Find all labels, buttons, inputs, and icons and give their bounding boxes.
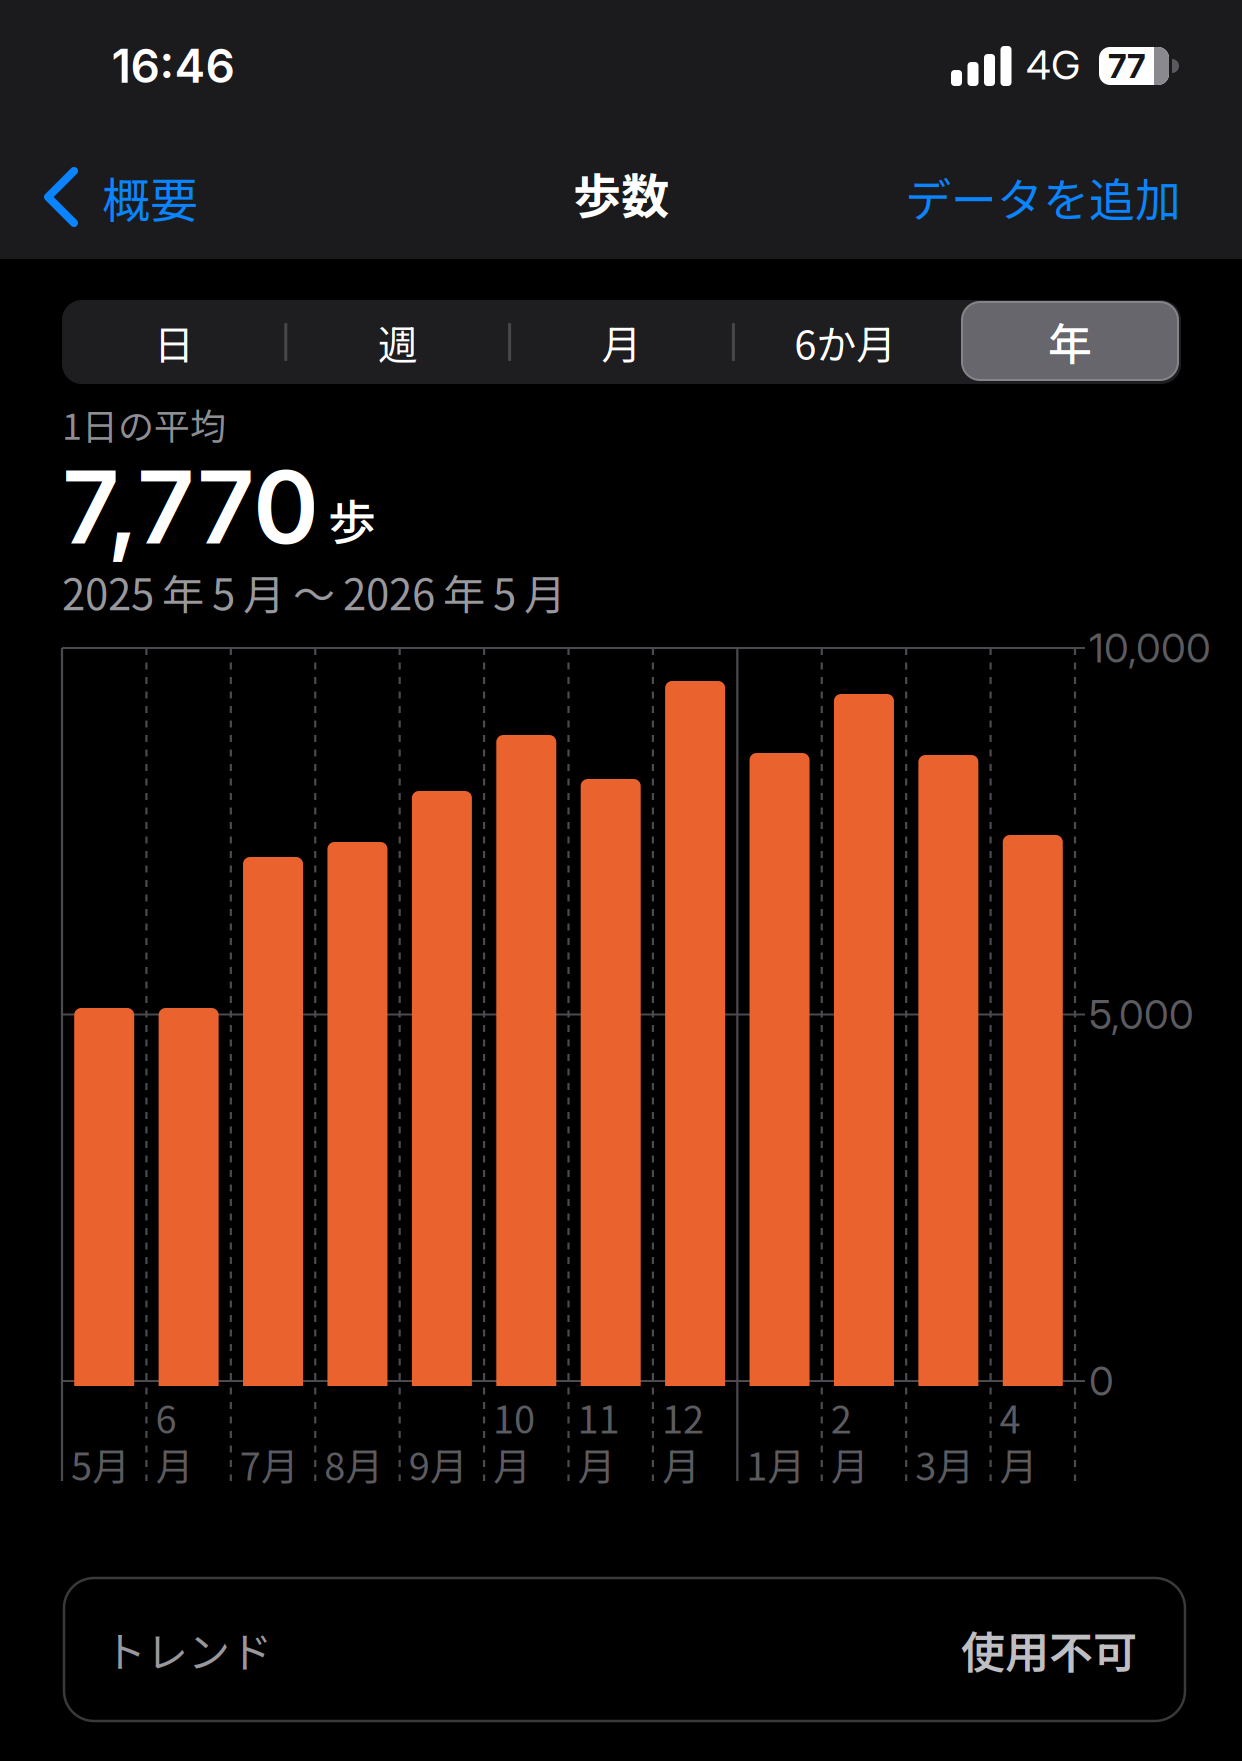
staticText: 月 — [601, 313, 641, 371]
staticText: 10 — [493, 1389, 535, 1444]
staticText: 月 — [493, 1436, 531, 1491]
staticText: 月 — [662, 1436, 700, 1491]
staticText: 月 — [1000, 1436, 1038, 1491]
button[interactable]: 6か月 — [745, 302, 945, 382]
staticText: 10,000 — [1089, 624, 1211, 672]
staticText: 9月 — [409, 1436, 468, 1491]
button[interactable]: 月 — [521, 302, 721, 382]
staticText: トレンド — [104, 1619, 272, 1680]
staticText: 7,770 — [62, 446, 319, 567]
staticText: 2 — [831, 1389, 852, 1444]
staticText: 年 — [1048, 309, 1092, 373]
button[interactable]: 年 — [962, 302, 1178, 380]
staticText: 4G — [1026, 41, 1080, 89]
staticText: 0 — [1089, 1357, 1114, 1405]
staticText: 週 — [378, 313, 418, 371]
button[interactable]: Back — [48, 157, 308, 237]
staticText: 月 — [155, 1436, 193, 1491]
staticText: 使用不可 — [961, 1618, 1137, 1681]
staticText: 4 — [1000, 1389, 1021, 1444]
button[interactable]: トレンド — [64, 1578, 1185, 1721]
staticText: 1月 — [746, 1436, 805, 1491]
staticText: 7月 — [240, 1436, 299, 1491]
staticText: 歩 — [328, 484, 376, 554]
staticText: 月 — [831, 1436, 869, 1491]
staticText: 1日の平均 — [62, 398, 226, 450]
staticText: 5月 — [71, 1436, 130, 1491]
staticText: 5,000 — [1089, 990, 1194, 1039]
staticText: データを追加 — [905, 164, 1181, 230]
staticText: 16:46 — [111, 38, 234, 94]
button[interactable]: 日 — [74, 302, 274, 382]
staticText: 日 — [154, 313, 194, 371]
staticText: 6か月 — [794, 313, 896, 371]
staticText: 歩数 — [573, 158, 669, 228]
button[interactable]: 週 — [298, 302, 498, 382]
staticText: 8月 — [324, 1436, 383, 1491]
staticText: 12 — [662, 1389, 704, 1444]
staticText: 3月 — [915, 1436, 974, 1491]
staticText: 6 — [155, 1389, 176, 1444]
staticText: 11 — [577, 1389, 619, 1444]
staticText: 概要 — [102, 162, 198, 232]
button[interactable]: データを追加 — [721, 157, 1181, 237]
staticText: 77 — [1108, 46, 1146, 86]
staticText: 2025 年 5 月 〜 2026 年 5 月 — [62, 562, 566, 622]
staticText: 月 — [577, 1436, 615, 1491]
